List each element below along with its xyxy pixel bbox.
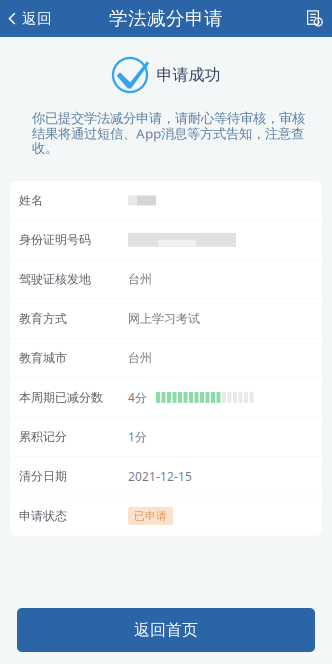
staticText: 4分	[128, 389, 147, 405]
staticText: 教育城市	[19, 351, 67, 365]
staticText: 本周期已减分数	[19, 390, 103, 405]
staticText: 返回	[22, 9, 52, 27]
staticText: 返回首页	[134, 620, 198, 640]
staticText: 身份证明号码	[19, 232, 91, 247]
staticText: 申请状态	[19, 508, 67, 523]
staticText: 学法减分申请	[109, 7, 223, 30]
button[interactable]: 申请记录	[297, 0, 332, 37]
staticText: 申请成功	[156, 65, 220, 85]
staticText: 累积记分	[19, 429, 67, 444]
button[interactable]: 返回首页	[17, 608, 315, 652]
staticText: 1分	[128, 429, 147, 445]
staticText: 2021-12-15	[128, 468, 192, 484]
staticText: 台州	[128, 272, 152, 287]
staticText: 已申请	[134, 509, 167, 522]
staticText: 驾驶证核发地	[19, 272, 91, 287]
staticText: 清分日期	[19, 469, 67, 484]
staticText: 台州	[128, 351, 152, 365]
staticText: 姓名	[19, 193, 43, 208]
staticText: 网上学习考试	[128, 311, 200, 326]
button[interactable]: 返回	[0, 0, 62, 37]
staticText: 你已提交学法减分申请，请耐心等待审核，审核结果将通过短信、App消息等方式告知，…	[32, 110, 305, 156]
staticText: 教育方式	[19, 311, 67, 326]
